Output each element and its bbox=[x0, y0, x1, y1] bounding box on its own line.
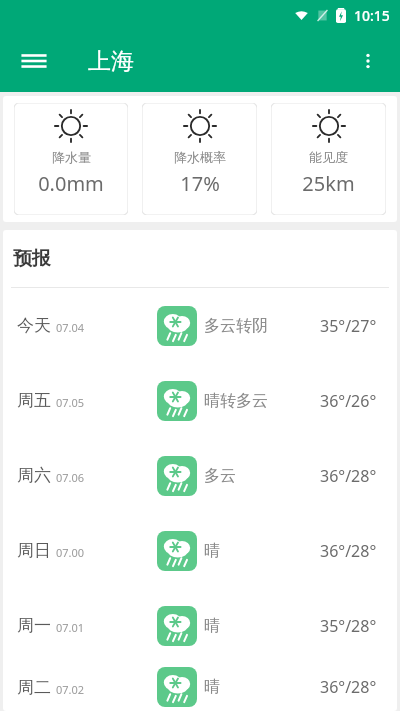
staticText: 周一 bbox=[17, 615, 51, 636]
staticText: 07.01 bbox=[56, 620, 85, 635]
staticText: 周六 bbox=[17, 465, 51, 486]
staticText: 36°/26° bbox=[320, 390, 377, 412]
button[interactable]: 降水量 bbox=[14, 103, 128, 215]
button[interactable]: 能见度 bbox=[271, 103, 386, 215]
staticText: 07.00 bbox=[56, 545, 85, 560]
button[interactable]: 周日 bbox=[3, 513, 397, 588]
staticText: 07.04 bbox=[56, 320, 85, 335]
staticText: 多云 bbox=[204, 466, 236, 486]
staticText: 晴 bbox=[204, 541, 220, 561]
button[interactable]: 周六 bbox=[3, 438, 397, 513]
button[interactable]: More options bbox=[350, 43, 386, 79]
button[interactable]: 今天 bbox=[3, 288, 397, 363]
staticText: 上海 bbox=[88, 47, 134, 76]
staticText: 10:15 bbox=[354, 6, 390, 25]
button[interactable]: 周二 bbox=[3, 663, 397, 711]
staticText: 25km bbox=[302, 170, 355, 197]
staticText: 0.0mm bbox=[38, 170, 104, 197]
staticText: 今天 bbox=[17, 315, 51, 336]
staticText: 168下载 bbox=[284, 644, 396, 685]
staticText: 晴转多云 bbox=[204, 391, 268, 411]
staticText: 35°/28° bbox=[320, 615, 377, 637]
staticText: 07.05 bbox=[56, 395, 85, 410]
button[interactable]: 周一 bbox=[3, 588, 397, 663]
staticText: 36°/28° bbox=[320, 465, 377, 487]
staticText: 预报 bbox=[13, 247, 51, 271]
staticText: 17% bbox=[180, 170, 220, 197]
staticText: 晴 bbox=[204, 616, 220, 636]
button[interactable]: 周五 bbox=[3, 363, 397, 438]
staticText: 多云转阴 bbox=[204, 316, 268, 336]
staticText: 晴 bbox=[204, 677, 220, 697]
staticText: 36°/28° bbox=[320, 676, 377, 698]
staticText: 周二 bbox=[17, 677, 51, 698]
staticText: 降水量 bbox=[52, 149, 91, 165]
staticText: 36°/28° bbox=[320, 540, 377, 562]
staticText: 07.06 bbox=[56, 470, 85, 485]
staticText: 35°/27° bbox=[320, 315, 377, 337]
button[interactable]: 降水概率 bbox=[142, 103, 257, 215]
staticText: 降水概率 bbox=[174, 149, 226, 165]
button[interactable]: Open navigation menu bbox=[16, 43, 52, 79]
staticText: 07.02 bbox=[56, 682, 85, 697]
staticText: 周日 bbox=[17, 540, 51, 561]
staticText: 能见度 bbox=[309, 149, 348, 165]
staticText: 周五 bbox=[17, 390, 51, 411]
